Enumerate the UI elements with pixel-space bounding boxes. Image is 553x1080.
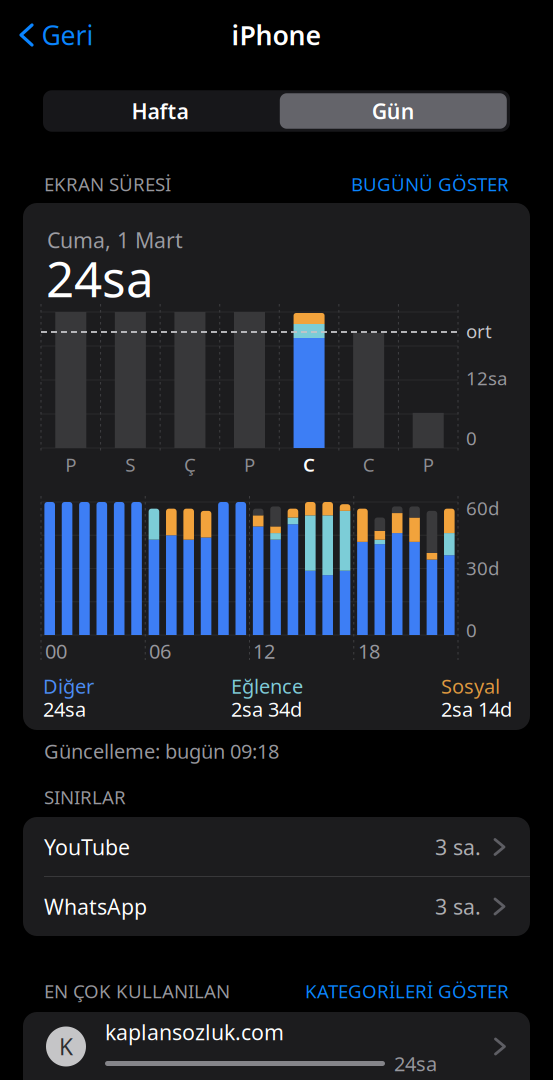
staticText: SINIRLAR <box>44 785 126 809</box>
button[interactable]: YouTube <box>23 817 530 876</box>
staticText: YouTube <box>44 833 130 861</box>
staticText: Güncelleme: bugün 09:18 <box>44 738 279 764</box>
staticText: K <box>59 1031 73 1061</box>
staticText: P <box>65 452 76 477</box>
staticText: 2sa 14d <box>441 696 512 722</box>
staticText: 18 <box>358 638 380 664</box>
button[interactable]: Gün <box>280 93 507 129</box>
staticText: Sosyal <box>441 673 500 699</box>
staticText: WhatsApp <box>44 892 147 921</box>
staticText: S <box>125 452 135 477</box>
button[interactable]: KATEGORİLERİ GÖSTER <box>269 979 509 1003</box>
staticText: Ç <box>184 452 196 477</box>
staticText: KATEGORİLERİ GÖSTER <box>305 979 509 1003</box>
staticText: 00 <box>45 638 67 664</box>
staticText: C <box>363 452 375 477</box>
staticText: kaplansozluk.com <box>105 1018 284 1046</box>
button[interactable]: BUGÜNÜ GÖSTER <box>289 172 509 196</box>
staticText: ort <box>466 319 492 343</box>
staticText: C <box>303 452 315 477</box>
staticText: P <box>423 452 434 477</box>
staticText: 3 sa. <box>435 833 481 861</box>
staticText: iPhone <box>231 17 321 53</box>
staticText: 30d <box>466 556 499 580</box>
staticText: Diğer <box>43 673 94 699</box>
staticText: Geri <box>41 17 93 53</box>
staticText: 24sa <box>43 696 86 722</box>
button[interactable]: Hafta <box>44 90 275 132</box>
staticText: 0 <box>466 618 477 642</box>
staticText: 2sa 34d <box>231 696 302 722</box>
staticText: Hafta <box>131 97 188 125</box>
staticText: BUGÜNÜ GÖSTER <box>351 172 509 196</box>
staticText: 24sa <box>394 1050 437 1077</box>
staticText: 0 <box>466 426 477 450</box>
staticText: Gün <box>372 97 415 125</box>
staticText: 3 sa. <box>435 892 481 921</box>
staticText: EN ÇOK KULLANILAN <box>44 979 230 1003</box>
button[interactable]: WhatsApp <box>23 877 530 936</box>
staticText: 24sa <box>46 245 154 311</box>
staticText: 06 <box>149 638 171 664</box>
staticText: 60d <box>466 496 499 520</box>
staticText: 12 <box>253 638 275 664</box>
staticText: Eğlence <box>231 673 303 699</box>
button[interactable]: Geri <box>20 17 93 53</box>
button[interactable]: K <box>23 1012 530 1080</box>
staticText: Cuma, 1 Mart <box>47 226 183 254</box>
staticText: P <box>244 452 255 477</box>
staticText: 12sa <box>466 366 507 390</box>
staticText: EKRAN SÜRESİ <box>44 172 171 196</box>
